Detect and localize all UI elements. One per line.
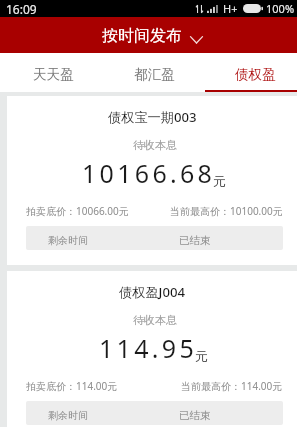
button[interactable]: 按时间发布 <box>94 21 211 51</box>
staticText: 剩余时间 <box>48 409 88 422</box>
staticText: 114.95 <box>99 331 198 365</box>
staticText: 剩余时间 <box>48 234 88 247</box>
staticText: 元 <box>195 348 208 364</box>
staticText: 当前最高价：10100.00元 <box>170 204 283 218</box>
staticText: 按时间发布 <box>102 26 182 46</box>
staticText: 债权宝一期003 <box>108 108 197 126</box>
staticText: 债权盈J004 <box>119 283 186 301</box>
staticText: 已结束 <box>179 409 211 422</box>
staticText: 待收本息 <box>133 313 177 327</box>
staticText: 10166.68 <box>82 156 216 190</box>
staticText: 都汇盈 <box>134 66 175 83</box>
staticText: 天天盈 <box>33 66 74 83</box>
staticText: 元 <box>213 173 226 189</box>
staticText: 100% <box>266 1 295 16</box>
button[interactable]: 债权宝一期003 <box>7 96 297 265</box>
button[interactable]: 天天盈 <box>3 53 104 92</box>
button[interactable]: 债权盈 <box>205 53 297 92</box>
staticText: 拍卖底价：10066.00元 <box>26 204 129 218</box>
staticText: 16:09 <box>6 1 37 17</box>
staticText: 待收本息 <box>133 138 177 152</box>
button[interactable]: 债权盈J004 <box>7 271 297 427</box>
staticText: 债权盈 <box>235 66 276 83</box>
other: Change sort order <box>190 35 203 44</box>
staticText: H+ <box>223 1 238 16</box>
staticText: 当前最高价：114.00元 <box>181 379 283 393</box>
button[interactable]: 都汇盈 <box>104 53 205 92</box>
staticText: 拍卖底价：114.00元 <box>26 379 118 393</box>
staticText: 已结束 <box>179 234 211 247</box>
